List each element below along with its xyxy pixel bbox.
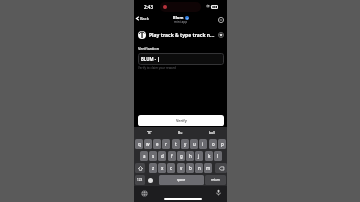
- staticText: Verification: [138, 46, 160, 51]
- staticText: b: [189, 165, 192, 171]
- staticText: j: [198, 153, 200, 159]
- button[interactable]: n: [195, 163, 203, 173]
- staticText: p: [221, 141, 224, 147]
- button[interactable]: BLUM -: [138, 53, 224, 65]
- staticText: e: [156, 141, 159, 147]
- button[interactable]: Play track & type track n...: [134, 29, 227, 41]
- button[interactable]: e: [153, 139, 161, 149]
- button[interactable]: k: [205, 151, 213, 161]
- button[interactable]: Verify: [138, 115, 224, 126]
- staticText: a: [143, 153, 146, 159]
- button[interactable]: Emoji keyboard: [146, 175, 155, 185]
- button[interactable]: Change keyboard: [140, 189, 148, 197]
- button[interactable]: y: [181, 139, 189, 149]
- staticText: t: [175, 141, 177, 147]
- staticText: mini app: [174, 20, 188, 24]
- button[interactable]: p: [218, 139, 226, 149]
- staticText: w: [146, 141, 150, 147]
- staticText: v: [180, 165, 183, 171]
- button[interactable]: v: [177, 163, 185, 173]
- staticText: BLUM -: [141, 56, 157, 62]
- staticText: y: [184, 141, 187, 147]
- staticText: k: [208, 153, 211, 159]
- button[interactable]: More options: [217, 16, 225, 24]
- staticText: c: [170, 165, 173, 171]
- button[interactable]: ball: [196, 127, 227, 137]
- button[interactable]: r: [162, 139, 170, 149]
- staticText: g: [180, 153, 183, 159]
- button[interactable]: m: [204, 163, 212, 173]
- staticText: i: [202, 141, 204, 147]
- button[interactable]: j: [195, 151, 203, 161]
- staticText: ball: [209, 130, 215, 135]
- button[interactable]: o: [209, 139, 217, 149]
- staticText: x: [161, 165, 164, 171]
- staticText: 123: [137, 178, 143, 182]
- button[interactable]: space: [159, 175, 204, 185]
- button[interactable]: x: [158, 163, 166, 173]
- button[interactable]: Dictate: [215, 189, 222, 196]
- staticText: u: [193, 141, 196, 147]
- staticText: h: [189, 153, 192, 159]
- button[interactable]: l: [214, 151, 222, 161]
- button[interactable]: z: [149, 163, 157, 173]
- button[interactable]: return: [205, 175, 226, 185]
- staticText: m: [206, 165, 211, 171]
- staticText: z: [152, 165, 155, 171]
- staticText: Bu: [178, 130, 183, 135]
- button[interactable]: Backspace: [215, 163, 227, 173]
- staticText: Blum: [173, 15, 184, 20]
- button[interactable]: q: [135, 139, 143, 149]
- staticText: d: [161, 153, 164, 159]
- button[interactable]: Stop recording: [218, 32, 224, 38]
- button[interactable]: “B”: [134, 127, 165, 137]
- button[interactable]: Bu: [165, 127, 196, 137]
- button[interactable]: f: [168, 151, 176, 161]
- staticText: return: [211, 178, 220, 182]
- button[interactable]: g: [177, 151, 185, 161]
- staticText: “B”: [147, 130, 152, 135]
- staticText: 2:43: [144, 4, 153, 10]
- staticText: Verify to claim your reward: [138, 66, 176, 70]
- button[interactable]: d: [158, 151, 166, 161]
- button[interactable]: i: [199, 139, 207, 149]
- staticText: l: [217, 153, 219, 159]
- staticText: s: [152, 153, 155, 159]
- staticText: n: [198, 165, 201, 171]
- staticText: q: [138, 141, 141, 147]
- staticText: r: [165, 141, 167, 147]
- button[interactable]: Back: [134, 15, 151, 22]
- button[interactable]: s: [149, 151, 157, 161]
- staticText: o: [212, 141, 215, 147]
- button[interactable]: a: [140, 151, 148, 161]
- button[interactable]: h: [186, 151, 194, 161]
- button[interactable]: w: [144, 139, 152, 149]
- button[interactable]: b: [186, 163, 194, 173]
- staticText: Play track & type track n...: [149, 32, 216, 39]
- staticText: space: [177, 178, 186, 182]
- button[interactable]: u: [190, 139, 198, 149]
- staticText: f: [171, 153, 173, 159]
- button[interactable]: Shift: [135, 163, 145, 173]
- staticText: Verify: [176, 118, 187, 123]
- button[interactable]: 123: [135, 175, 145, 185]
- staticText: Back: [140, 16, 149, 21]
- button[interactable]: c: [167, 163, 175, 173]
- button[interactable]: t: [172, 139, 180, 149]
